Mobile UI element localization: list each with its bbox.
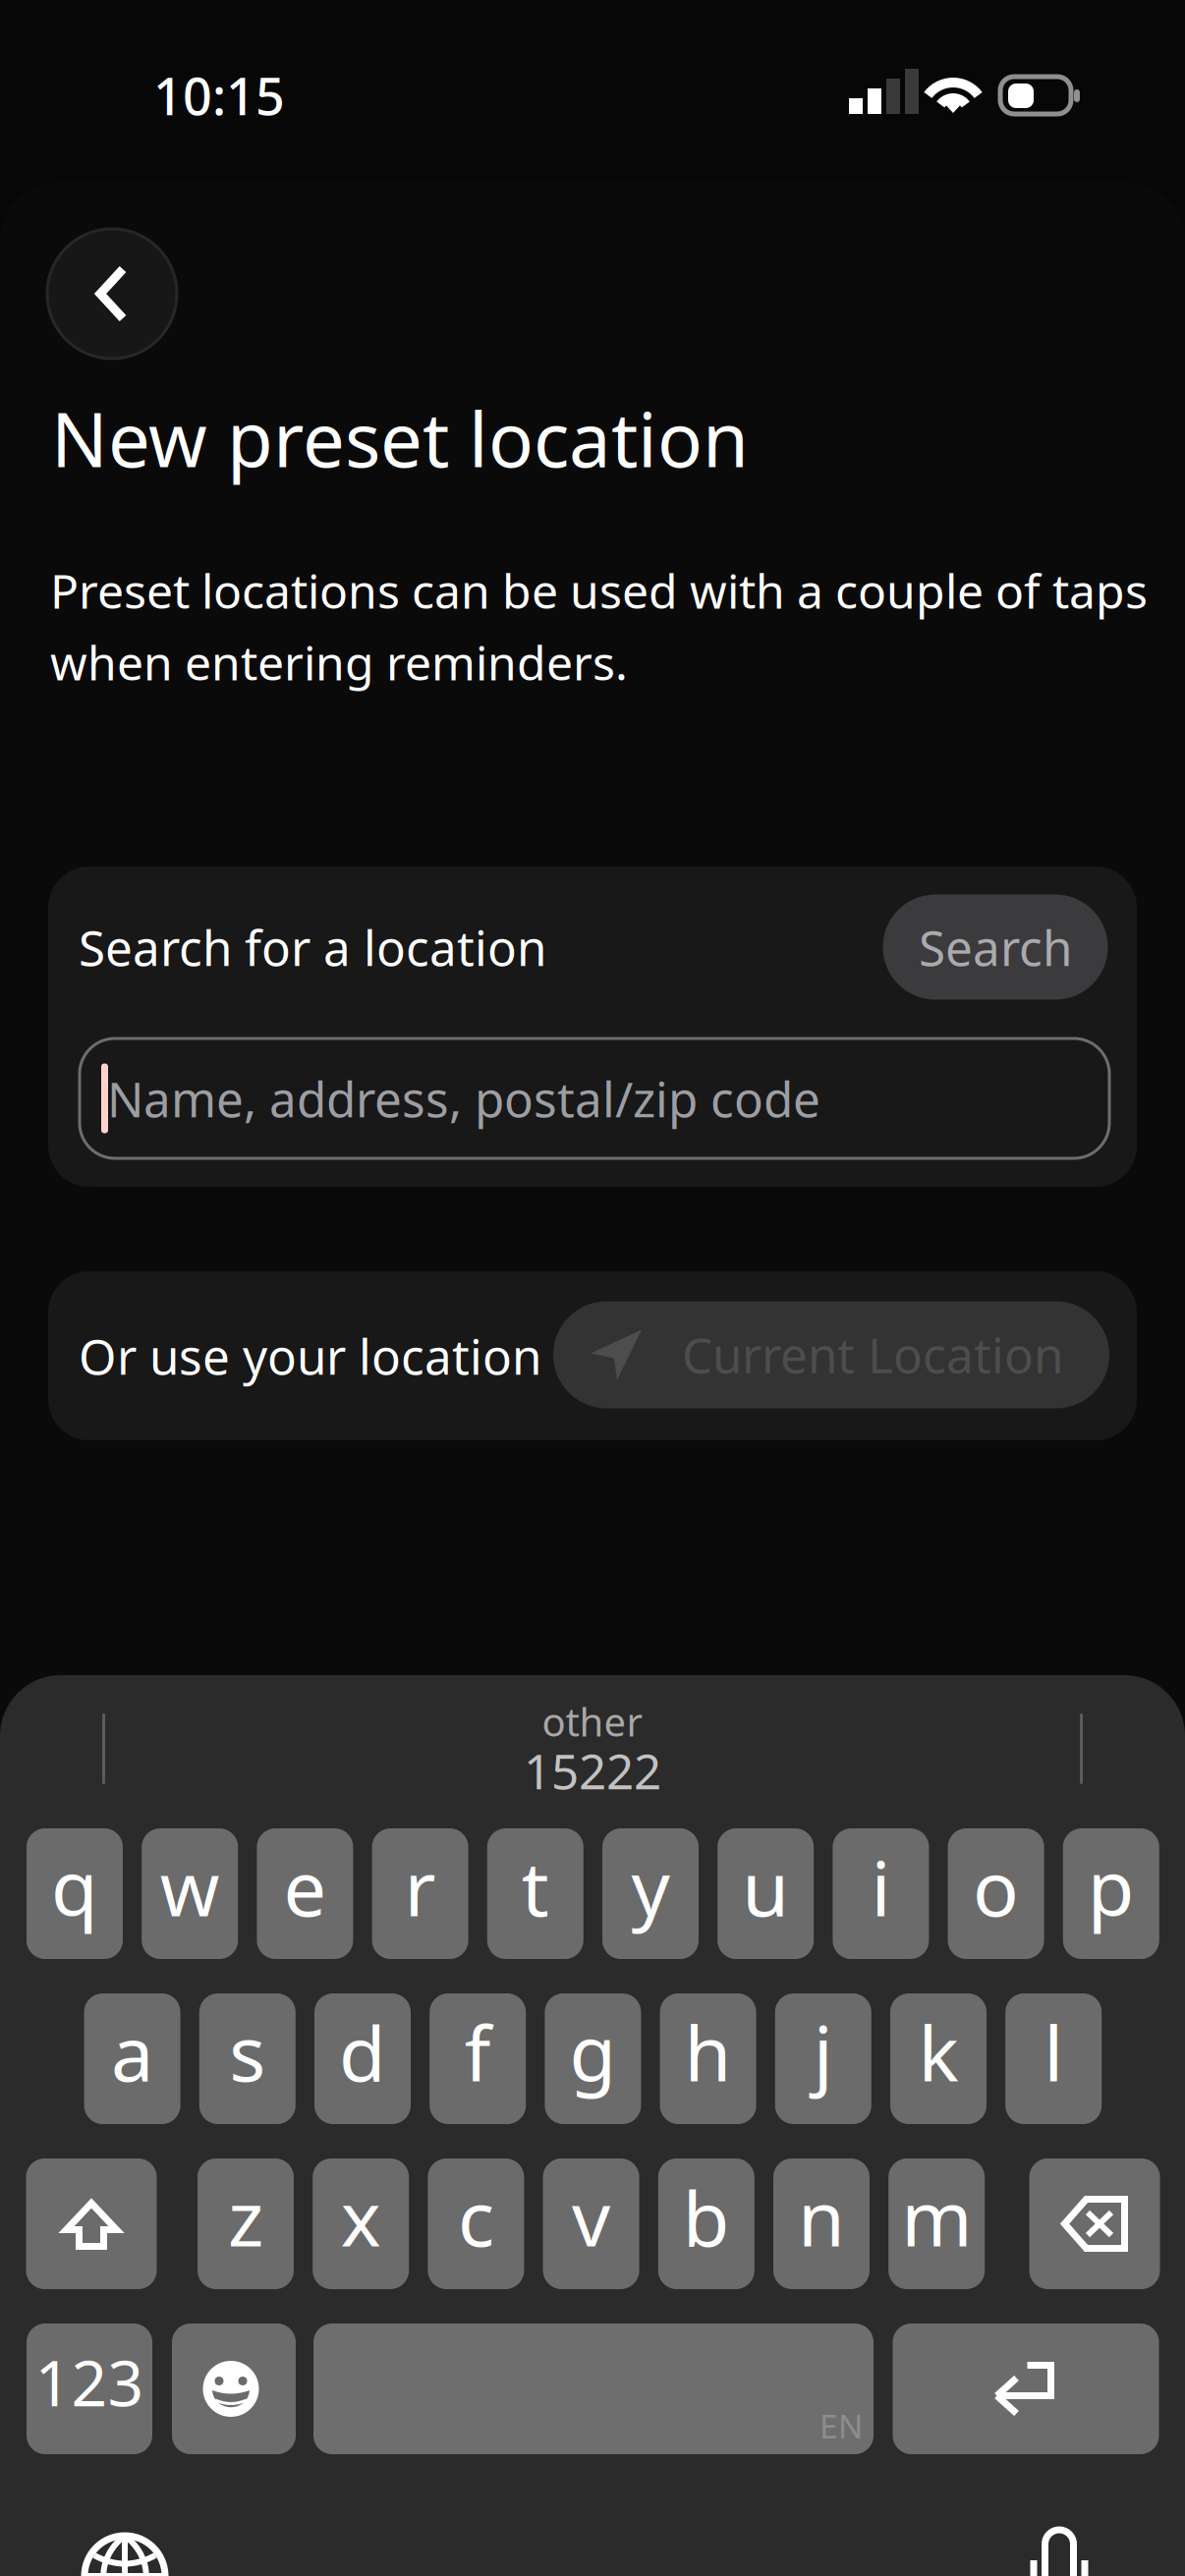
button[interactable]: s xyxy=(199,1993,296,2124)
staticText: m xyxy=(901,2167,972,2267)
button[interactable]: z xyxy=(197,2158,294,2289)
button[interactable]: Enter xyxy=(893,2324,1159,2454)
staticText: o xyxy=(973,1836,1019,1937)
staticText: when entering reminders. xyxy=(50,631,628,693)
button[interactable]: w xyxy=(142,1828,238,1959)
staticText: y xyxy=(631,1836,670,1937)
button[interactable]: o xyxy=(948,1828,1044,1959)
button[interactable]: t xyxy=(487,1828,583,1959)
button[interactable]: h xyxy=(660,1993,756,2124)
button[interactable]: f xyxy=(430,1993,526,2124)
staticText: other xyxy=(542,1695,643,1747)
button[interactable]: m xyxy=(888,2158,985,2289)
staticText: k xyxy=(918,2001,959,2102)
staticText: 10:15 xyxy=(153,61,285,129)
staticText: e xyxy=(283,1836,327,1937)
button[interactable]: n xyxy=(773,2158,870,2289)
staticText: u xyxy=(742,1836,789,1937)
button[interactable]: a xyxy=(84,1993,180,2124)
staticText: g xyxy=(569,2001,616,2102)
button[interactable]: e xyxy=(257,1828,353,1959)
button[interactable]: Change language xyxy=(71,2522,179,2576)
staticText: z xyxy=(228,2167,263,2267)
button[interactable]: v xyxy=(543,2158,639,2289)
staticText: 123 xyxy=(35,2340,144,2424)
staticText: n xyxy=(798,2167,845,2267)
staticText: h xyxy=(684,2001,732,2102)
button[interactable]: u xyxy=(717,1828,814,1959)
button[interactable]: b xyxy=(658,2158,754,2289)
button[interactable]: g xyxy=(545,1993,641,2124)
staticText: Name, address, postal/zip code xyxy=(107,1066,820,1131)
button[interactable]: Search xyxy=(883,895,1108,1000)
staticText: t xyxy=(522,1836,549,1937)
staticText: d xyxy=(339,2001,386,2102)
staticText: w xyxy=(160,1836,220,1937)
staticText: p xyxy=(1088,1836,1135,1937)
staticText: New preset location xyxy=(51,389,749,488)
staticText: j xyxy=(813,2001,833,2102)
staticText: Search for a location xyxy=(79,915,546,979)
button[interactable]: Back xyxy=(47,229,177,359)
staticText: f xyxy=(464,2001,491,2102)
button[interactable]: Name, address, postal/zip code xyxy=(80,1038,1109,1158)
staticText: Preset locations can be used with a coup… xyxy=(50,559,1148,622)
button[interactable]: Emoji xyxy=(172,2324,296,2454)
staticText: Current Location xyxy=(682,1322,1063,1386)
button[interactable]: x xyxy=(313,2158,409,2289)
staticText: b xyxy=(683,2167,730,2267)
staticText: l xyxy=(1044,2001,1063,2102)
staticText: Or use your location xyxy=(79,1324,541,1388)
button[interactable]: y xyxy=(602,1828,699,1959)
button[interactable]: Current Location xyxy=(553,1301,1109,1408)
button[interactable]: l xyxy=(1005,1993,1102,2124)
button[interactable]: i xyxy=(833,1828,929,1959)
staticText: q xyxy=(51,1836,98,1937)
staticText: a xyxy=(111,2001,153,2102)
staticText: Search xyxy=(919,915,1072,979)
staticText: x xyxy=(341,2167,381,2267)
button[interactable]: r xyxy=(372,1828,468,1959)
staticText: 15222 xyxy=(524,1738,661,1803)
staticText: v xyxy=(572,2167,610,2267)
button[interactable]: Shift xyxy=(26,2158,157,2289)
button[interactable]: c xyxy=(428,2158,524,2289)
staticText: EN xyxy=(819,2404,863,2447)
button[interactable]: Voice input xyxy=(981,2511,1138,2576)
button[interactable]: j xyxy=(775,1993,871,2124)
staticText: r xyxy=(404,1836,436,1937)
button[interactable]: q xyxy=(27,1828,123,1959)
staticText: s xyxy=(229,2001,266,2102)
staticText: i xyxy=(871,1836,891,1937)
button[interactable]: d xyxy=(314,1993,411,2124)
button[interactable]: Space xyxy=(313,2324,874,2454)
button[interactable]: 123 xyxy=(27,2324,152,2454)
button[interactable]: k xyxy=(890,1993,987,2124)
button[interactable]: Backspace xyxy=(1029,2158,1160,2289)
button[interactable]: p xyxy=(1063,1828,1159,1959)
staticText: c xyxy=(458,2167,494,2267)
